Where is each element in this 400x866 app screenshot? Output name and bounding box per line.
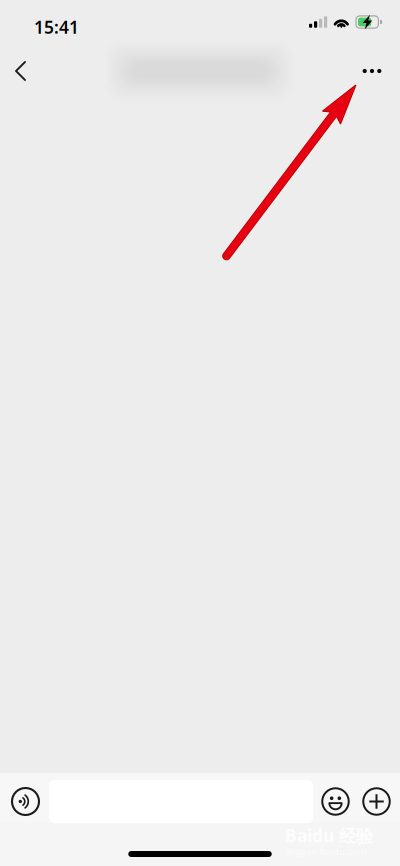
button[interactable]: More (352, 48, 392, 94)
button[interactable]: More options (356, 780, 397, 823)
button[interactable]: Emoji (315, 780, 356, 823)
button[interactable]: Voice message (6, 780, 45, 823)
button[interactable]: Back (3, 49, 47, 93)
staticText: 15:41 (34, 15, 79, 38)
staticText: Baidu 经验 (285, 824, 373, 847)
